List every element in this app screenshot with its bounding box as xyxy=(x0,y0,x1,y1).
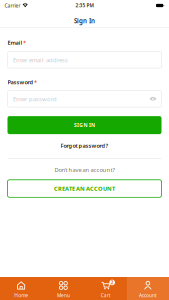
button[interactable]: CREATE AN ACCOUNT xyxy=(7,180,161,197)
staticText: Enter email address xyxy=(13,56,68,64)
button[interactable]: Home xyxy=(0,277,42,300)
button[interactable]: Account xyxy=(127,277,169,300)
staticText: Home xyxy=(14,292,28,299)
staticText: SIGN IN xyxy=(74,122,95,128)
staticText: 2 xyxy=(111,279,114,286)
button[interactable]: Menu xyxy=(42,277,84,300)
staticText: Don't have an account? xyxy=(54,166,114,174)
staticText: Cart xyxy=(101,292,111,299)
staticText: 2:35 PM xyxy=(75,2,93,9)
staticText: Password xyxy=(7,78,33,86)
staticText: Email xyxy=(7,39,22,46)
staticText: Account xyxy=(139,292,157,299)
staticText: Enter password xyxy=(13,95,57,103)
staticText: Carrier xyxy=(4,2,20,9)
staticText: CREATE AN ACCOUNT xyxy=(54,185,115,192)
staticText: * xyxy=(23,39,26,46)
button[interactable]: Forgot password? xyxy=(7,141,161,150)
button[interactable]: SIGN IN xyxy=(7,116,161,134)
staticText: Sign In xyxy=(74,17,95,25)
staticText: Menu xyxy=(57,292,70,299)
button[interactable]: 2 xyxy=(84,277,127,300)
staticText: Forgot password? xyxy=(60,142,108,149)
staticText: * xyxy=(34,78,37,86)
